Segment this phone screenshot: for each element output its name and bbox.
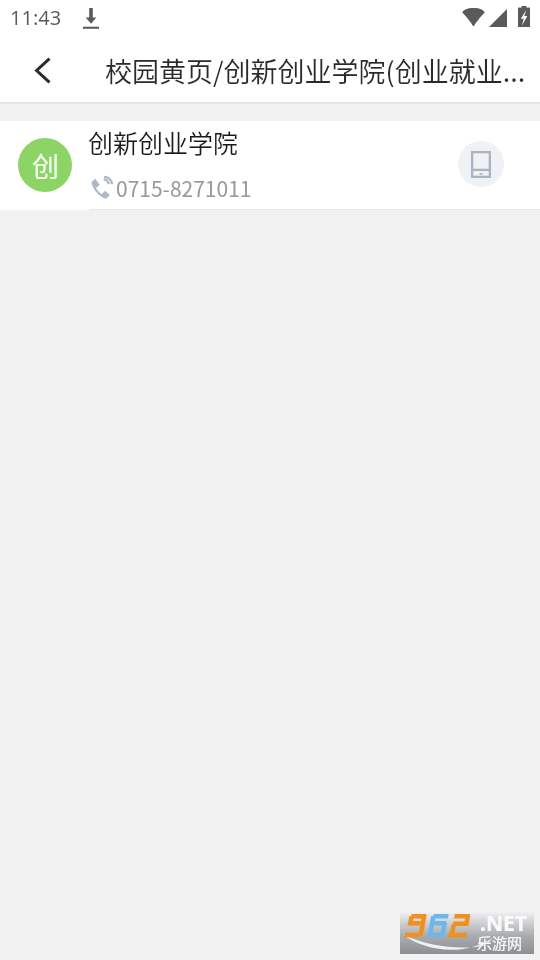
staticText: 0715-8271011 <box>116 173 252 203</box>
staticText: 乐游网 <box>477 932 523 954</box>
staticText: 校园黄页/创新创业学院(创业就业... <box>105 51 526 90</box>
button[interactable]: Send message <box>458 141 504 187</box>
button[interactable]: Back <box>14 38 70 102</box>
staticText: 创新创业学院 <box>88 124 239 160</box>
staticText: 11:43 <box>10 4 62 31</box>
button[interactable]: 创 <box>0 121 540 210</box>
staticText: 创 <box>32 146 59 185</box>
staticText: .NET <box>480 909 527 938</box>
